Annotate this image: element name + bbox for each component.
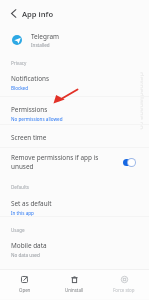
button[interactable]: Force stop: [99, 269, 149, 299]
staticText: Notifications: [11, 74, 50, 83]
button[interactable]: Telegram: [0, 30, 149, 50]
staticText: In this app: [11, 210, 34, 216]
staticText: Screen time: [11, 133, 47, 142]
staticText: Mobile data: [11, 241, 47, 250]
staticText: Open: [19, 287, 31, 293]
staticText: App info: [22, 9, 54, 19]
staticText: Telegram: [31, 32, 59, 41]
button[interactable]: [0, 96, 149, 124]
staticText: No data used: [11, 252, 40, 258]
staticText: Permissions: [11, 105, 48, 114]
button[interactable]: Uninstall: [49, 269, 99, 299]
staticText: Uninstall: [65, 287, 84, 293]
button[interactable]: [0, 124, 149, 147]
staticText: Privacy: [11, 60, 27, 66]
staticText: Usage: [11, 227, 25, 233]
staticText: Installed: [31, 42, 50, 48]
staticText: No permissions allowed: [11, 116, 63, 122]
button[interactable]: [0, 193, 149, 216]
staticText: Force stop: [113, 287, 135, 293]
staticText: dexpediapage.com: [140, 72, 146, 136]
button[interactable]: Back: [6, 6, 20, 20]
staticText: Blocked: [11, 85, 29, 91]
staticText: Defaults: [11, 184, 29, 190]
button[interactable]: Open: [0, 269, 49, 299]
button[interactable]: [0, 68, 149, 96]
button[interactable]: [0, 147, 149, 177]
button[interactable]: [0, 235, 149, 261]
staticText: Set as default: [11, 199, 52, 208]
staticText: Remove permissions if app is unused: [11, 153, 101, 171]
